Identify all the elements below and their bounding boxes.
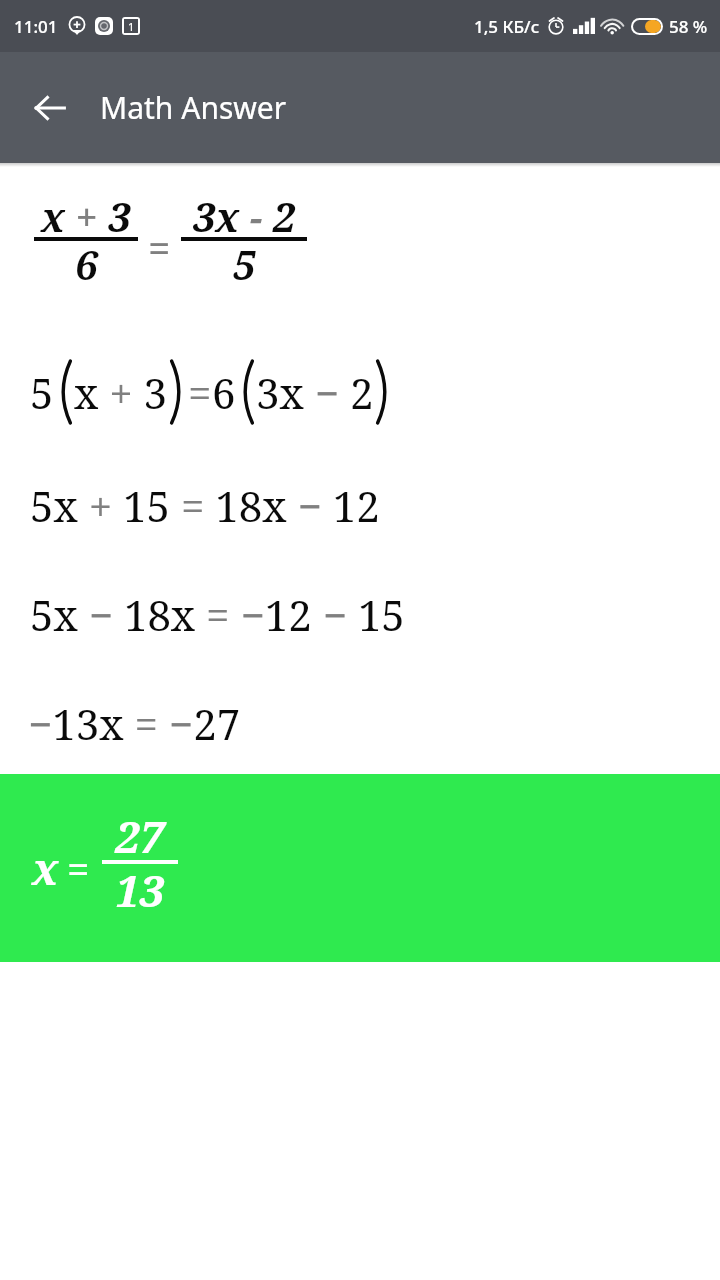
staticText: = [148, 220, 171, 274]
staticText: = [188, 364, 212, 421]
staticText: = [67, 841, 90, 895]
staticText: 5x − 18x = −12 − 15 [30, 586, 405, 643]
staticText: 3x − 2 [193, 189, 296, 243]
staticText: 5 [233, 237, 256, 291]
button[interactable]: Back [22, 80, 78, 136]
staticText: Math Answer [100, 87, 287, 128]
staticText: 5x + 15 = 18x − 12 [30, 477, 380, 534]
staticText: 27 [115, 806, 165, 866]
staticText: 1 [128, 19, 135, 33]
staticText: x + 3 [41, 189, 131, 243]
staticText: 6 [75, 237, 98, 291]
button[interactable]: x [0, 774, 720, 962]
staticText: 1,5 КБ/с [474, 15, 540, 38]
staticText: 58 % [669, 15, 708, 38]
staticText: 5 [30, 364, 54, 421]
staticText: −13x = −27 [28, 695, 241, 752]
staticText: 11:01 [14, 15, 58, 38]
staticText: 6 [212, 364, 236, 421]
staticText: 3x − 2 [256, 364, 374, 421]
staticText: x + 3 [74, 364, 168, 421]
staticText: x [32, 838, 59, 898]
staticText: 13 [115, 860, 165, 920]
